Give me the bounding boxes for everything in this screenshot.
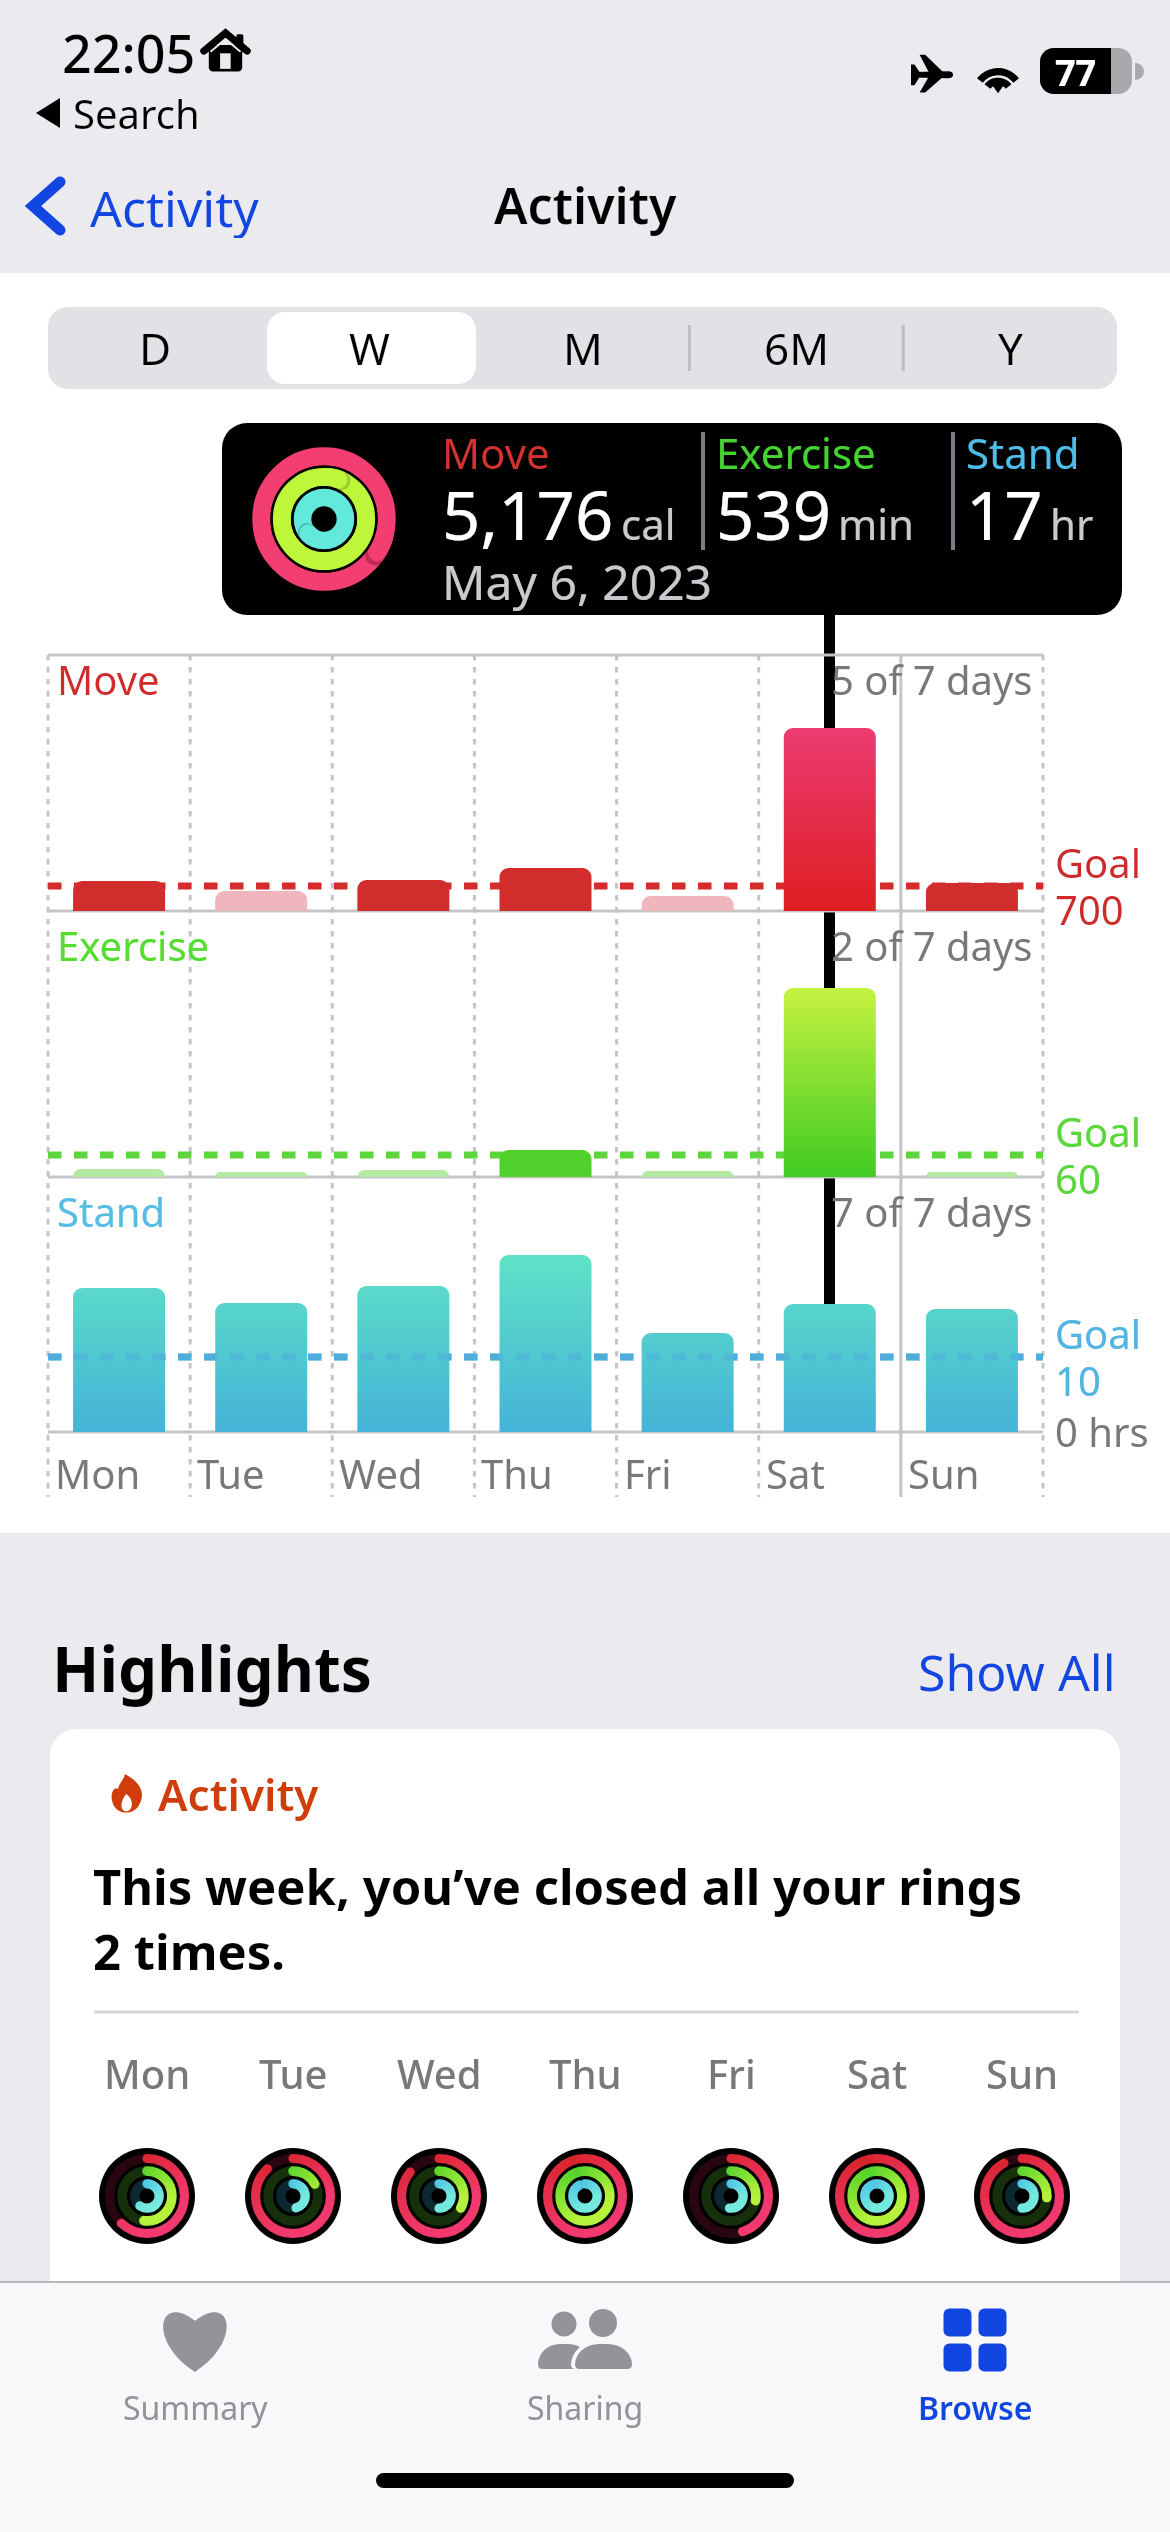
button[interactable]: D bbox=[48, 307, 262, 389]
staticText: Tue bbox=[197, 1446, 265, 1500]
staticText: min bbox=[838, 495, 915, 552]
button[interactable]: W bbox=[262, 307, 476, 389]
staticText: M bbox=[563, 318, 603, 378]
button[interactable]: Move bbox=[222, 423, 1122, 615]
staticText: Move bbox=[57, 652, 160, 706]
staticText: Sun bbox=[986, 2046, 1059, 2100]
button[interactable]: Activity bbox=[50, 1729, 1120, 2289]
button[interactable]: Browse bbox=[780, 2281, 1170, 2461]
other: Wi-Fi bbox=[974, 54, 1022, 91]
staticText: 60 bbox=[1055, 1151, 1101, 1205]
staticText: Wed bbox=[397, 2046, 482, 2100]
staticText: Search bbox=[73, 86, 200, 140]
staticText: 5 of 7 days bbox=[831, 652, 1033, 706]
staticText: Activity bbox=[90, 174, 259, 238]
staticText: 10 bbox=[1055, 1353, 1101, 1407]
staticText: Sat bbox=[847, 2046, 908, 2100]
staticText: Sat bbox=[766, 1446, 825, 1500]
staticText: Stand bbox=[966, 424, 1080, 481]
staticText: This week, you’ve closed all your rings … bbox=[93, 1853, 1053, 1984]
staticText: Exercise bbox=[57, 918, 210, 972]
staticText: Goal bbox=[1055, 1306, 1142, 1360]
staticText: 17 bbox=[966, 468, 1043, 559]
staticText: Fri bbox=[707, 2046, 756, 2100]
other: Airplane mode bbox=[911, 54, 954, 93]
staticText: Highlights bbox=[52, 1626, 372, 1710]
button[interactable]: Summary bbox=[0, 2281, 390, 2461]
button[interactable]: Activity bbox=[26, 174, 259, 238]
staticText: Fri bbox=[624, 1446, 672, 1500]
staticText: May 6, 2023 bbox=[442, 549, 713, 614]
staticText: cal bbox=[621, 495, 676, 552]
staticText: Y bbox=[998, 318, 1023, 378]
staticText: 2 of 7 days bbox=[831, 918, 1033, 972]
button[interactable]: Y bbox=[904, 307, 1117, 389]
staticText: Tue bbox=[259, 2046, 328, 2100]
staticText: 6M bbox=[764, 318, 830, 378]
staticText: 0 hrs bbox=[1055, 1404, 1149, 1458]
staticText: 5,176 bbox=[442, 468, 614, 559]
staticText: Goal bbox=[1055, 1104, 1142, 1158]
staticText: Sharing bbox=[527, 2386, 644, 2430]
staticText: Goal bbox=[1055, 835, 1142, 889]
staticText: Activity bbox=[158, 1764, 319, 1824]
staticText: Mon bbox=[55, 1446, 141, 1500]
staticText: Sun bbox=[908, 1446, 980, 1500]
staticText: Show All bbox=[918, 1638, 1116, 1706]
staticText: 77 bbox=[1055, 48, 1097, 94]
staticText: Move bbox=[442, 424, 550, 481]
staticText: Exercise bbox=[716, 424, 876, 481]
staticText: Stand bbox=[57, 1184, 166, 1238]
staticText: 700 bbox=[1055, 882, 1124, 936]
staticText: Thu bbox=[549, 2046, 622, 2100]
staticText: Summary bbox=[123, 2386, 268, 2430]
staticText: 539 bbox=[716, 468, 831, 559]
button[interactable]: 6M bbox=[690, 307, 904, 389]
staticText: Thu bbox=[481, 1446, 553, 1500]
staticText: 22:05 bbox=[62, 17, 196, 88]
staticText: hr bbox=[1050, 495, 1094, 552]
staticText: Wed bbox=[339, 1446, 423, 1500]
other: Battery 77 percent bbox=[1040, 48, 1132, 94]
button[interactable]: Sharing bbox=[390, 2281, 780, 2461]
button[interactable]: Search bbox=[36, 86, 200, 140]
staticText: W bbox=[349, 318, 390, 378]
staticText: Browse bbox=[918, 2386, 1033, 2430]
staticText: D bbox=[139, 318, 172, 378]
staticText: Mon bbox=[104, 2046, 191, 2100]
staticText: 7 of 7 days bbox=[831, 1184, 1033, 1238]
button[interactable]: Show All bbox=[918, 1638, 1116, 1706]
staticText: Activity bbox=[494, 171, 677, 237]
button[interactable]: M bbox=[476, 307, 690, 389]
